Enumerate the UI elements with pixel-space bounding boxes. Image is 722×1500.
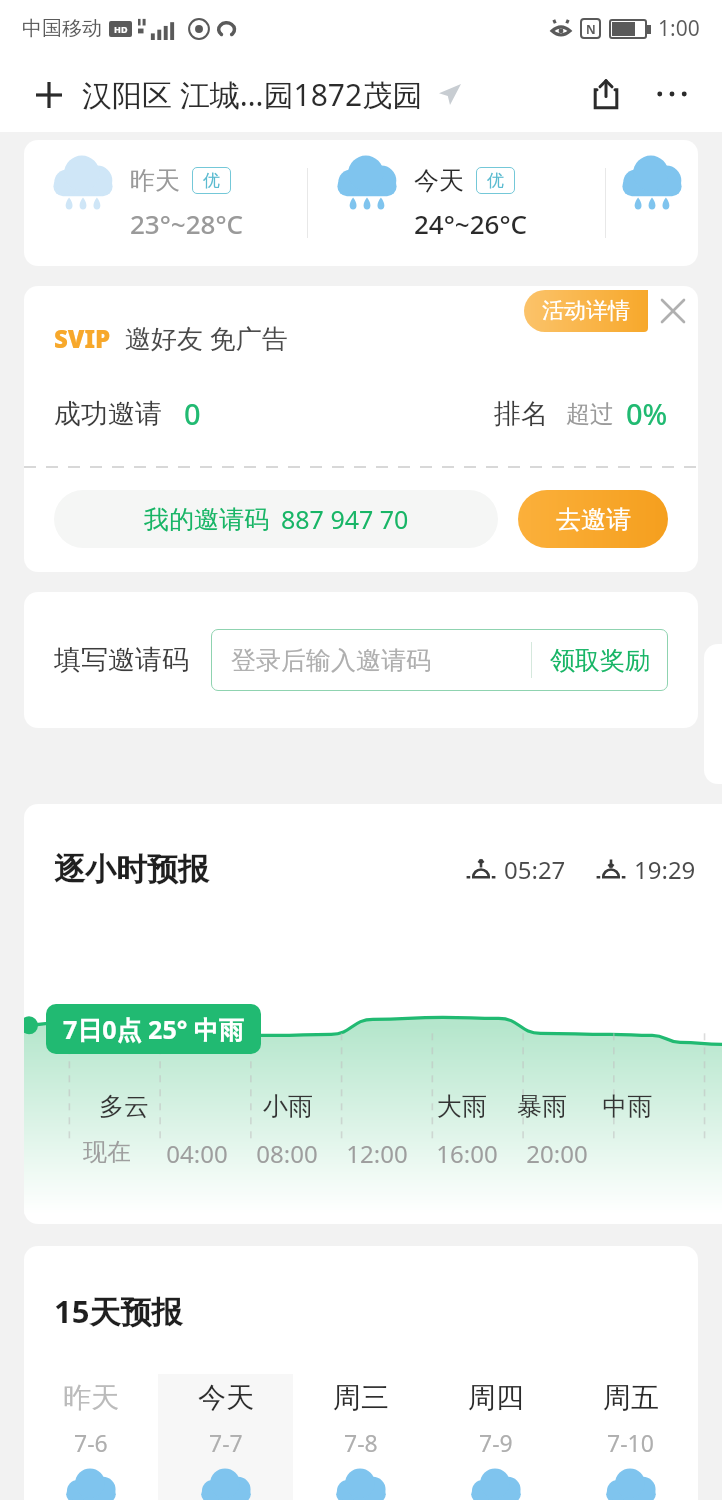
button[interactable]: 昨天 xyxy=(24,1374,158,1500)
staticText: 逐小时预报 xyxy=(54,850,209,889)
staticText: 7-10 xyxy=(607,1427,654,1458)
staticText: 昨天 xyxy=(63,1380,119,1415)
staticText: 0% xyxy=(626,394,668,433)
staticText: 7-8 xyxy=(344,1427,378,1458)
staticText: 周四 xyxy=(468,1380,524,1415)
button[interactable]: More options xyxy=(648,70,696,118)
staticText: 多云 xyxy=(63,1091,185,1122)
button[interactable]: 领取奖励 xyxy=(532,645,668,676)
staticText: 中雨 xyxy=(582,1091,673,1122)
staticText: 现在 xyxy=(62,1137,152,1167)
button[interactable]: Share xyxy=(582,70,630,118)
staticText: 我的邀请码 xyxy=(144,504,269,535)
staticText: SVIP xyxy=(54,322,111,355)
button[interactable]: 登录后输入邀请码 xyxy=(211,629,668,691)
button[interactable]: 今天 xyxy=(158,1374,293,1500)
button[interactable]: 周三 xyxy=(293,1374,428,1500)
button[interactable] xyxy=(606,140,698,266)
staticText: 08:00 xyxy=(242,1137,332,1170)
staticText: 7日0点 25° 中雨 xyxy=(63,1012,244,1046)
staticText: 7-7 xyxy=(209,1427,243,1458)
button[interactable]: 周五 xyxy=(563,1374,698,1500)
staticText: 1:00 xyxy=(658,14,700,43)
button[interactable]: 周四 xyxy=(428,1374,563,1500)
staticText: 0 xyxy=(184,394,201,433)
staticText: 04:00 xyxy=(152,1137,242,1170)
staticText: HD xyxy=(114,23,128,35)
staticText: 成功邀请 xyxy=(54,397,162,431)
staticText: 15天预报 xyxy=(54,1290,183,1332)
staticText: 19:29 xyxy=(634,853,696,886)
staticText: 领取奖励 xyxy=(550,645,650,676)
staticText: 887 947 70 xyxy=(281,502,409,536)
staticText: 汉阳区 江城…园1872茂园 xyxy=(82,74,423,115)
button[interactable]: 去邀请 xyxy=(518,490,668,548)
staticText: 邀好友 免广告 xyxy=(125,320,288,356)
staticText: 周三 xyxy=(333,1380,389,1415)
staticText: 昨天 xyxy=(130,165,180,196)
button[interactable]: 昨天 xyxy=(24,140,307,266)
staticText: 暴雨 xyxy=(502,1091,582,1122)
staticText: 去邀请 xyxy=(556,504,631,535)
staticText: 今天 xyxy=(198,1380,254,1415)
button[interactable]: Add city xyxy=(30,76,68,114)
button[interactable]: 活动详情 xyxy=(524,290,648,332)
staticText: 优 xyxy=(487,170,504,191)
staticText: 16:00 xyxy=(422,1137,512,1170)
staticText: 小雨 xyxy=(185,1091,391,1122)
button[interactable]: 今天 xyxy=(308,140,605,266)
staticText: 7-6 xyxy=(74,1427,108,1458)
staticText: 05:27 xyxy=(504,853,566,886)
staticText: 登录后输入邀请码 xyxy=(231,645,531,676)
staticText: 活动详情 xyxy=(542,297,630,325)
button[interactable]: Close xyxy=(648,286,698,336)
staticText: 优 xyxy=(203,170,220,191)
staticText: 24°~26°C xyxy=(414,206,528,241)
staticText: 20:00 xyxy=(512,1137,602,1170)
staticText: 今天 xyxy=(414,165,464,196)
staticText: 23°~28°C xyxy=(130,206,244,241)
staticText: 周五 xyxy=(603,1380,659,1415)
staticText: 中国移动 xyxy=(22,16,102,41)
staticText: 12:00 xyxy=(332,1137,422,1170)
staticText: N xyxy=(586,21,596,37)
staticText: 大雨 xyxy=(422,1091,502,1122)
staticText: 7-9 xyxy=(479,1427,513,1458)
button[interactable]: 我的邀请码 xyxy=(54,490,498,548)
staticText: 超过 xyxy=(566,399,614,429)
button[interactable]: 7日0点 25° 中雨 xyxy=(46,1004,261,1054)
staticText: 排名 xyxy=(494,397,548,431)
staticText: 填写邀请码 xyxy=(54,643,189,677)
